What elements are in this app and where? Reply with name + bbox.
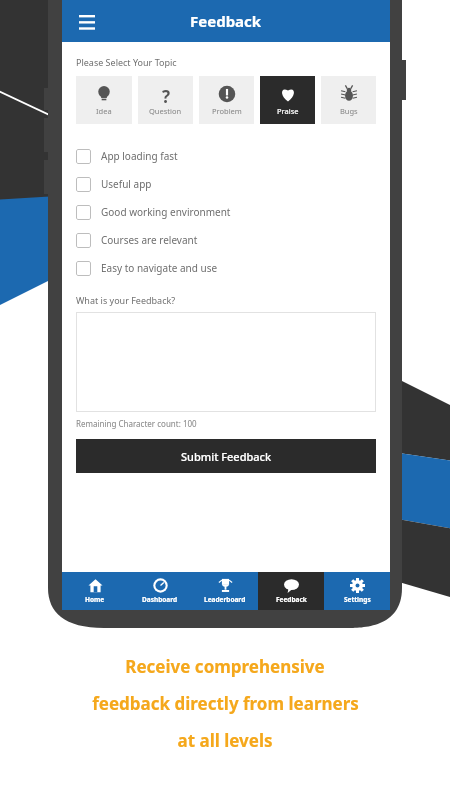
button[interactable]: Useful app [76,170,376,198]
staticText: Home [85,595,105,604]
button[interactable]: Submit Feedback [76,439,376,473]
staticText: Courses are relevant [101,233,198,247]
staticText: Dashboard [142,595,178,604]
staticText: Remaining Character count: 100 [76,418,197,429]
staticText: Please Select Your Topic [76,56,177,68]
staticText: Settings [344,595,371,604]
button[interactable] [76,312,376,412]
staticText: Praise [277,106,299,116]
staticText: Feedback [276,595,307,604]
button[interactable]: Feedback [258,572,324,610]
staticText: What is your Feedback? [76,294,176,306]
staticText: Good working environment [101,205,231,219]
staticText: Question [149,106,182,116]
staticText: Idea [96,106,112,116]
button[interactable]: App loading fast [76,142,376,170]
staticText: Easy to navigate and use [101,261,218,275]
staticText: at all levels [177,729,273,752]
button[interactable]: Good working environment [76,198,376,226]
button[interactable]: Dashboard [127,572,192,610]
button[interactable]: Bugs [321,76,376,124]
staticText: feedback directly from learners [92,692,359,715]
staticText: Bugs [340,106,358,116]
staticText: Problem [212,106,242,116]
staticText: Useful app [101,177,152,191]
staticText: Feedback [190,11,262,31]
button[interactable]: Idea [76,76,132,124]
button[interactable]: Open navigation menu [74,8,100,34]
button[interactable]: Leaderboard [192,572,258,610]
staticText: App loading fast [101,149,178,163]
button[interactable]: Easy to navigate and use [76,254,376,282]
staticText: Receive comprehensive [125,655,325,678]
staticText: Submit Feedback [181,449,272,464]
button[interactable]: ? [138,76,193,124]
button[interactable]: Settings [324,572,390,610]
button[interactable]: Praise [260,76,315,124]
staticText: ? [162,85,171,103]
button[interactable]: Courses are relevant [76,226,376,254]
button[interactable]: Home [62,572,127,610]
button[interactable]: Problem [199,76,254,124]
staticText: Leaderboard [204,595,246,604]
